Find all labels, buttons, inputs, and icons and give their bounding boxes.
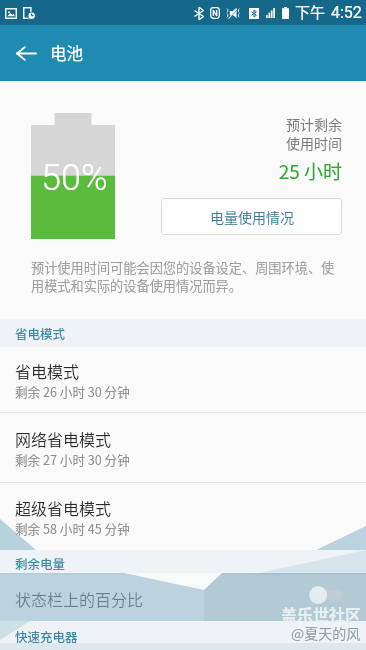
button[interactable]: 省电模式	[0, 347, 366, 412]
staticText: 省电模式	[15, 359, 80, 382]
staticText: 剩余 26 小时 30 分钟	[15, 382, 130, 400]
staticText: 电量使用情况	[210, 207, 294, 227]
staticText: 省电模式	[15, 324, 66, 342]
staticText: 4:52	[331, 3, 362, 22]
staticText: 剩余电量	[15, 554, 66, 572]
staticText: 网络省电模式	[15, 427, 112, 450]
staticText: 超级省电模式	[15, 496, 112, 519]
button[interactable]: 电量使用情况	[161, 198, 342, 235]
staticText: 50%	[41, 157, 108, 199]
button[interactable]: 状态栏上的百分比	[0, 575, 366, 621]
button[interactable]: Back	[0, 27, 52, 79]
staticText: 预计使用时间可能会因您的设备设定、周围环境、使用模式和实际的设备使用情况而异。	[31, 258, 339, 295]
staticText: 电池	[50, 41, 83, 65]
staticText: @夏天的风	[291, 623, 361, 643]
staticText: 盖乐世社区	[281, 602, 362, 625]
button[interactable]: 网络省电模式	[0, 413, 366, 482]
staticText: 剩余 58 小时 45 分钟	[15, 519, 130, 537]
staticText: 预计剩余	[0, 114, 342, 134]
staticText: 状态栏上的百分比	[15, 587, 144, 610]
staticText: 25 小时	[0, 157, 342, 185]
button[interactable]: 超级省电模式	[0, 483, 366, 550]
staticText: 下午	[295, 1, 326, 23]
staticText: 快速充电器	[15, 627, 78, 645]
staticText: 使用时间	[0, 133, 342, 153]
staticText: 剩余 27 小时 30 分钟	[15, 450, 130, 468]
